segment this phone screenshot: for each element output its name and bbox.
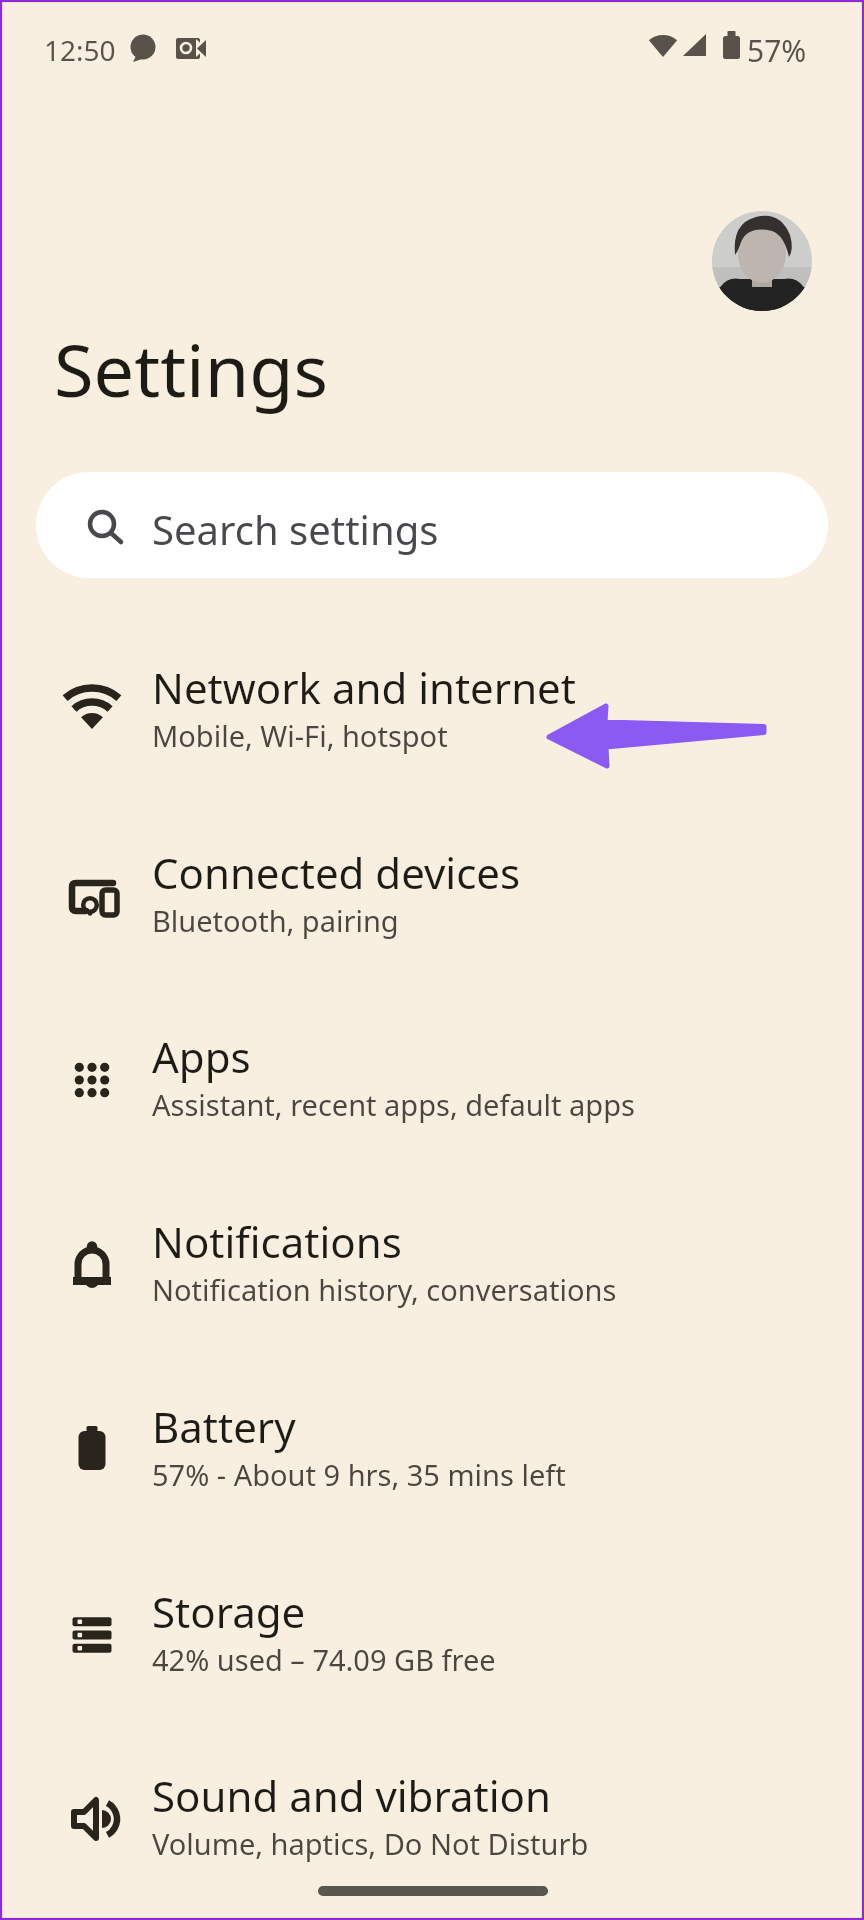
staticText: Apps: [152, 1028, 251, 1085]
staticText: 12:50: [44, 31, 116, 69]
staticText: Bluetooth, pairing: [152, 901, 399, 940]
button[interactable]: Apps: [0, 992, 864, 1177]
staticText: 42% used – 74.09 GB free: [152, 1640, 496, 1679]
button[interactable]: Notifications: [0, 1177, 864, 1362]
staticText: Settings: [54, 320, 328, 418]
staticText: 57% - About 9 hrs, 35 mins left: [152, 1455, 566, 1494]
button[interactable]: [712, 211, 812, 311]
staticText: Mobile, Wi-Fi, hotspot: [152, 716, 448, 755]
button[interactable]: Search settings: [36, 472, 828, 578]
button[interactable]: Battery: [0, 1362, 864, 1547]
button[interactable]: Storage: [0, 1547, 864, 1732]
staticText: Notification history, conversations: [152, 1270, 617, 1309]
button[interactable]: Network and internet: [0, 623, 864, 808]
staticText: Notifications: [152, 1213, 402, 1270]
staticText: Battery: [152, 1398, 296, 1455]
button[interactable]: Sound and vibration: [0, 1731, 864, 1916]
staticText: Connected devices: [152, 844, 521, 901]
staticText: Network and internet: [152, 659, 576, 716]
staticText: Storage: [152, 1583, 306, 1640]
staticText: Search settings: [152, 502, 439, 556]
button[interactable]: Connected devices: [0, 808, 864, 993]
staticText: Volume, haptics, Do Not Disturb: [152, 1824, 589, 1863]
staticText: Sound and vibration: [152, 1767, 551, 1824]
staticText: Assistant, recent apps, default apps: [152, 1085, 635, 1124]
staticText: 57%: [747, 30, 807, 71]
